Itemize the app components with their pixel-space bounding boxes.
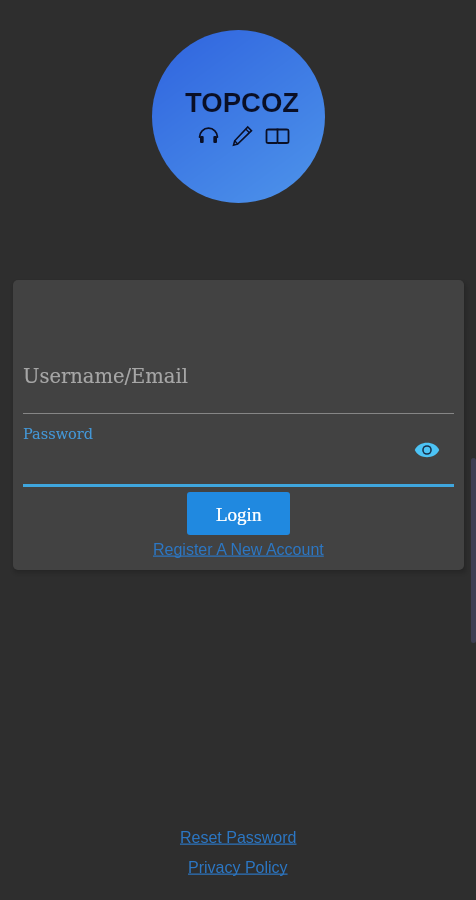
staticText: TOPCOZ xyxy=(185,87,300,118)
staticText: Password xyxy=(23,426,93,443)
button[interactable]: Reset Password xyxy=(180,829,297,847)
button[interactable]: Register A New Account xyxy=(153,541,324,559)
button[interactable]: Show password xyxy=(414,437,440,463)
staticText: Login xyxy=(216,504,262,525)
button[interactable]: Privacy Policy xyxy=(188,859,288,877)
button[interactable]: Login xyxy=(187,492,290,535)
staticText: Username/Email xyxy=(23,365,188,388)
